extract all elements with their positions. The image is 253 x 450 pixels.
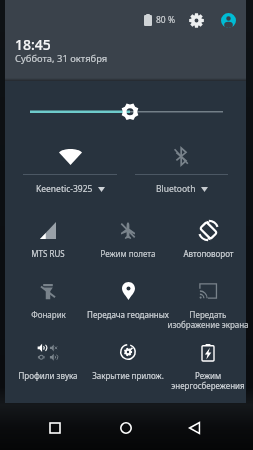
button[interactable]: Режим полета bbox=[88, 212, 168, 273]
button[interactable]: Keenetic-3925 bbox=[5, 142, 126, 195]
staticText: Bluetooth bbox=[156, 183, 196, 195]
button[interactable]: Режим энергосбережения bbox=[168, 334, 248, 395]
button[interactable]: Профили звука bbox=[7, 334, 88, 395]
button[interactable]: Home bbox=[112, 414, 140, 442]
staticText: Передать изображение экрана bbox=[167, 309, 249, 330]
staticText: Keenetic-3925 bbox=[36, 183, 93, 195]
staticText: Передача геоданных bbox=[87, 309, 169, 320]
button[interactable]: Передача геоданных bbox=[88, 273, 168, 334]
staticText: Режим энергосбережения bbox=[171, 370, 245, 391]
staticText: Автоповорот bbox=[183, 248, 234, 259]
button[interactable]: Bluetooth bbox=[126, 142, 246, 195]
button[interactable]: Brightness bbox=[5, 98, 246, 126]
button[interactable]: Recent apps bbox=[41, 414, 69, 442]
button[interactable]: Передать изображение экрана bbox=[168, 273, 248, 334]
staticText: Профили звука bbox=[18, 370, 78, 381]
staticText: Закрытие прилож. bbox=[92, 370, 164, 381]
staticText: 18:45 bbox=[15, 35, 51, 54]
button[interactable]: Автоповорот bbox=[168, 212, 248, 273]
button[interactable]: Back bbox=[180, 414, 208, 442]
staticText: Фонарик bbox=[31, 309, 66, 320]
button[interactable]: Settings bbox=[188, 12, 204, 28]
button[interactable]: Закрытие прилож. bbox=[88, 334, 168, 395]
button[interactable]: Фонарик bbox=[7, 273, 88, 334]
button[interactable]: User account bbox=[220, 12, 236, 28]
staticText: MTS RUS bbox=[31, 248, 65, 259]
staticText: Суббота, 31 октября bbox=[15, 52, 108, 65]
staticText: Режим полета bbox=[100, 248, 156, 259]
button[interactable]: MTS RUS bbox=[7, 212, 88, 273]
staticText: 80 % bbox=[156, 14, 175, 26]
